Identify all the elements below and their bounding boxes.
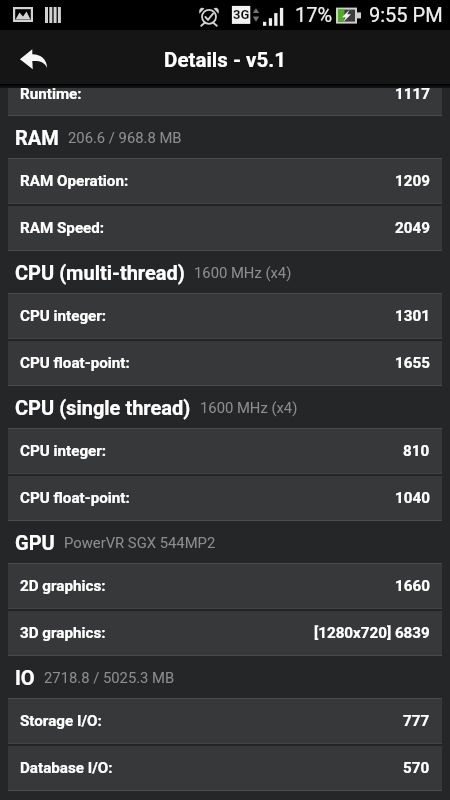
staticText: 3D graphics: bbox=[20, 624, 106, 642]
button[interactable]: RAM Speed: bbox=[8, 206, 442, 250]
button[interactable]: Database I/O: bbox=[8, 746, 442, 790]
staticText: 1209 bbox=[395, 172, 430, 190]
staticText: 206.6 / 968.8 MB bbox=[68, 129, 182, 146]
button[interactable]: 2D graphics: bbox=[8, 564, 442, 608]
button[interactable]: CPU float-point: bbox=[8, 341, 442, 385]
staticText: 1655 bbox=[395, 354, 430, 372]
button[interactable]: Storage I/O: bbox=[8, 699, 442, 743]
button[interactable]: 3D graphics: bbox=[8, 611, 442, 655]
staticText: Storage I/O: bbox=[20, 712, 102, 730]
staticText: 3G bbox=[233, 7, 250, 22]
staticText: IO bbox=[15, 666, 35, 689]
staticText: 1600 MHz (x4) bbox=[200, 399, 298, 416]
button[interactable]: Runtime: bbox=[8, 88, 442, 116]
staticText: CPU (single thread) bbox=[15, 396, 191, 419]
staticText: PowerVR SGX 544MP2 bbox=[64, 534, 216, 551]
staticText: RAM Operation: bbox=[20, 172, 129, 190]
staticText: GPU bbox=[15, 531, 55, 554]
staticText: Database I/O: bbox=[20, 759, 113, 777]
staticText: Details - v5.1 bbox=[0, 48, 450, 72]
staticText: 2718.8 / 5025.3 MB bbox=[44, 669, 175, 686]
staticText: 1600 MHz (x4) bbox=[194, 264, 292, 281]
button[interactable]: CPU integer: bbox=[8, 429, 442, 473]
button[interactable]: Back bbox=[0, 30, 66, 84]
staticText: 810 bbox=[403, 442, 430, 460]
staticText: 1660 bbox=[395, 577, 430, 595]
staticText: 1117 bbox=[395, 88, 430, 103]
staticText: 2049 bbox=[395, 219, 430, 237]
staticText: Runtime: bbox=[20, 88, 82, 103]
staticText: 777 bbox=[403, 712, 430, 730]
staticText: 17% bbox=[295, 3, 333, 26]
staticText: [1280x720] 6839 bbox=[314, 624, 430, 642]
button[interactable]: CPU float-point: bbox=[8, 476, 442, 520]
staticText: 1040 bbox=[395, 489, 430, 507]
staticText: CPU float-point: bbox=[20, 354, 130, 372]
button[interactable]: RAM Operation: bbox=[8, 159, 442, 203]
staticText: 2D graphics: bbox=[20, 577, 106, 595]
button[interactable]: CPU integer: bbox=[8, 294, 442, 338]
staticText: RAM Speed: bbox=[20, 219, 105, 237]
staticText: CPU float-point: bbox=[20, 489, 130, 507]
staticText: CPU integer: bbox=[20, 442, 107, 460]
staticText: RAM bbox=[15, 126, 59, 149]
staticText: 570 bbox=[403, 759, 430, 777]
staticText: 1301 bbox=[395, 307, 430, 325]
staticText: CPU (multi-thread) bbox=[15, 261, 185, 284]
staticText: CPU integer: bbox=[20, 307, 107, 325]
staticText: 9:55 PM bbox=[369, 3, 443, 26]
